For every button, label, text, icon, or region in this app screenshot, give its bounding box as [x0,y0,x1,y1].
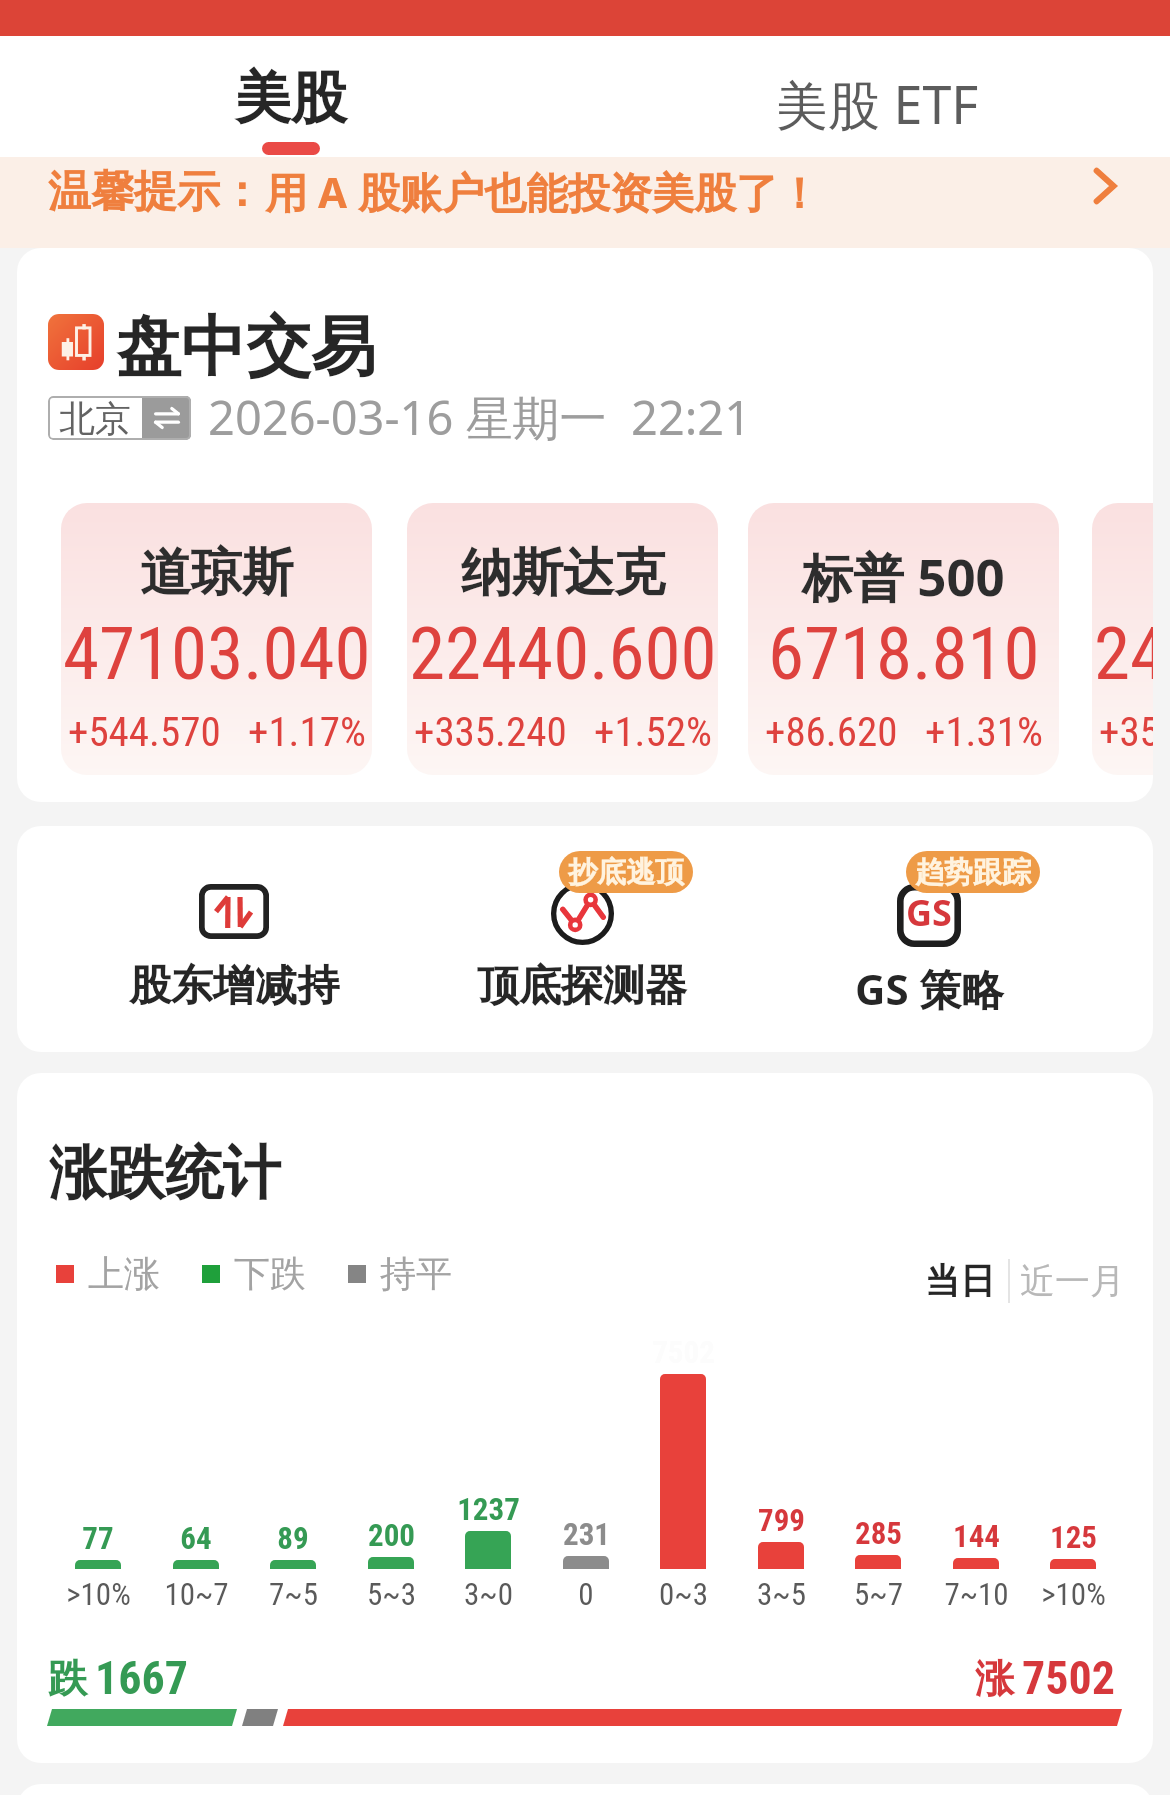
other: More [1090,167,1128,205]
staticText: 0 [578,1576,594,1612]
staticText: 47103.040 [63,611,371,697]
staticText: 22440.600 [409,611,717,697]
staticText: 799 [758,1502,805,1538]
staticText: 温馨提示： [48,165,263,219]
button[interactable] [758,1542,804,1569]
button[interactable] [368,1557,414,1569]
staticText: 6718.810 [768,611,1040,697]
staticText: +1.52% [594,708,712,756]
staticText: 7~5 [269,1576,318,1612]
staticText: GS [906,888,952,937]
button[interactable]: 下跌 [202,1251,306,1296]
staticText: 285 [855,1515,902,1551]
button[interactable]: 纳指100 [1092,503,1153,775]
staticText: +335.240 [414,708,567,756]
button[interactable] [563,1556,609,1569]
button[interactable] [1050,1559,1096,1569]
staticText: +544.570 [68,708,221,756]
button[interactable]: 美股 [140,36,442,157]
staticText: 125 [1050,1519,1097,1555]
button[interactable]: 近一月 [1020,1259,1125,1303]
button[interactable] [173,1560,219,1569]
button[interactable]: 当日 [925,1259,995,1303]
staticText: 1667 [95,1651,188,1705]
staticText: 89 [277,1520,309,1556]
staticText: 上涨 [88,1251,160,1296]
staticText: 涨跌统计 [49,1137,281,1210]
staticText: >10% [1041,1576,1106,1612]
staticText: 用 A 股账户也能投资美股了！ [265,163,820,220]
staticText: 趋势跟踪 [915,854,1031,891]
staticText: 顶底探测器 [477,960,687,1013]
staticText: 7502 [1022,1651,1115,1705]
staticText: 3~5 [757,1576,806,1612]
button[interactable] [953,1558,999,1569]
staticText: 跌 [48,1654,87,1703]
staticText: +1.17% [248,708,366,756]
staticText: 盘中交易 [116,306,376,388]
button[interactable]: 美股 ETF [727,36,1027,157]
staticText: 道琼斯 [140,541,293,605]
staticText: 抄底逃顶 [568,854,684,891]
button[interactable]: 抄底逃顶 [462,840,702,1040]
staticText: 0~3 [659,1576,708,1612]
staticText: 标普 500 [802,541,1005,611]
button[interactable]: 上涨 [56,1251,160,1296]
staticText: 下跌 [234,1251,306,1296]
button[interactable]: 纳斯达克 [407,503,718,775]
staticText: 231 [563,1516,610,1552]
staticText: 5~7 [854,1576,903,1612]
button[interactable] [855,1555,901,1569]
staticText: 纳斯达克 [461,541,665,605]
button[interactable]: 持平 [348,1251,452,1296]
button[interactable]: 道琼斯 [61,503,372,775]
staticText: 77 [82,1520,114,1556]
staticText: >10% [66,1576,131,1612]
staticText: 5~3 [367,1576,416,1612]
button[interactable]: GS [809,840,1049,1040]
staticText: 美股 [235,63,347,134]
staticText: +1.31% [925,708,1043,756]
staticText: 2026-03-16 星期一 22:21 [208,385,752,449]
button[interactable] [75,1560,121,1569]
staticText: 3~0 [464,1576,513,1612]
staticText: 10~7 [164,1576,229,1612]
button[interactable]: 北京 [48,396,191,440]
staticText: 股东增减持 [129,960,339,1013]
button[interactable]: 标普 500 [748,503,1059,775]
staticText: 7~10 [944,1576,1009,1612]
staticText: 持平 [380,1251,452,1296]
button[interactable] [270,1560,316,1569]
staticText: +86.620 [765,708,898,756]
button[interactable] [465,1531,511,1569]
staticText: 144 [953,1518,1000,1554]
staticText: GS 策略 [855,960,1004,1017]
staticText: 涨 [975,1654,1014,1703]
staticText: 24876.400 [1094,611,1153,697]
button[interactable]: 温馨提示： [0,157,1170,248]
staticText: 美股 ETF [776,68,979,139]
staticText: +356.210 [1099,708,1153,756]
staticText: 64 [180,1520,212,1556]
staticText: 北京 [59,396,131,440]
button[interactable]: 股东增减持 [114,840,354,1040]
staticText: 200 [368,1517,415,1553]
staticText: 1237 [457,1491,520,1527]
button[interactable] [660,1374,706,1569]
